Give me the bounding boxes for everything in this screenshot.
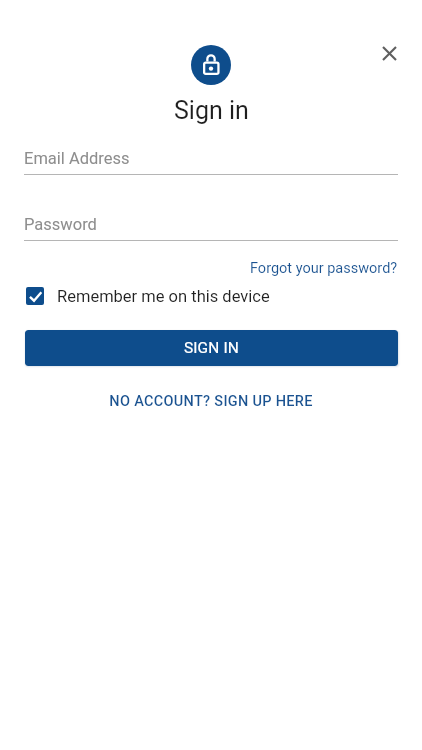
button[interactable]: Remember me on this device [24, 285, 398, 307]
staticText: Email Address [24, 149, 130, 168]
button[interactable]: Email Address [24, 143, 398, 173]
button[interactable]: Close [367, 31, 411, 75]
button[interactable]: Forgot your password? [240, 254, 406, 283]
staticText: Remember me on this device [57, 287, 270, 306]
staticText: Forgot your password? [250, 260, 398, 277]
button[interactable]: Password [24, 209, 398, 239]
button[interactable]: NO ACCOUNT? SIGN UP HERE [101, 389, 321, 414]
staticText: NO ACCOUNT? SIGN UP HERE [109, 393, 313, 410]
staticText: Sign in [174, 96, 249, 125]
staticText: Password [24, 215, 97, 234]
staticText: SIGN IN [184, 339, 239, 357]
button[interactable]: SIGN IN [25, 330, 398, 366]
